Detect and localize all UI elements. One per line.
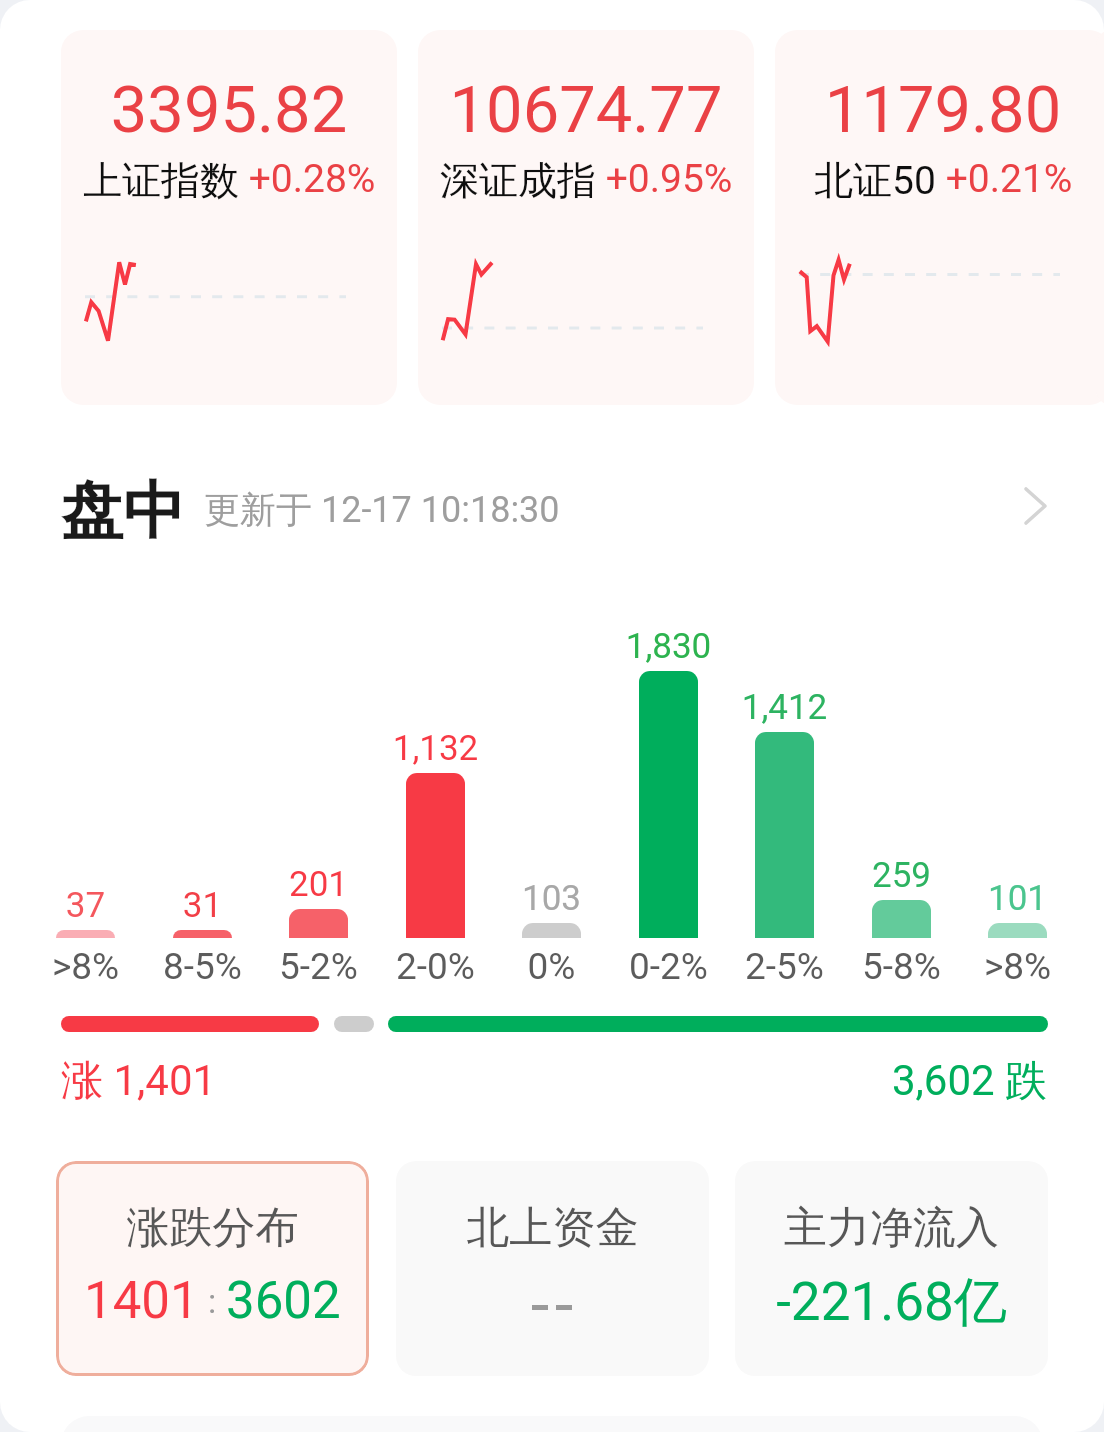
staticText: 2-0% — [366, 945, 505, 988]
staticText: 涨跌分布 — [56, 1201, 369, 1255]
staticText: +0.21% — [936, 156, 1073, 202]
staticText: 31 — [133, 885, 272, 926]
staticText: 103 — [482, 878, 621, 919]
staticText: -221.68亿 — [735, 1269, 1048, 1336]
button[interactable]: 北上资金 — [396, 1161, 709, 1376]
staticText: 3,602 跌 — [892, 1055, 1048, 1108]
staticText: 201 — [249, 864, 388, 905]
button[interactable]: 1179.80 — [775, 30, 1104, 405]
staticText: 10674.77 — [418, 72, 754, 148]
staticText: 259 — [832, 855, 971, 896]
staticText: 1,830 — [599, 626, 738, 667]
staticText: 2-5% — [715, 945, 854, 988]
staticText: 1,132 — [366, 728, 505, 769]
staticText: 北证50 — [814, 156, 936, 205]
staticText: 0-2% — [599, 945, 738, 988]
button[interactable]: 3395.82 — [61, 30, 397, 405]
button[interactable]: 10674.77 — [418, 30, 754, 405]
staticText: 101 — [948, 878, 1087, 919]
staticText: >8% — [948, 945, 1087, 988]
staticText: 3602 — [226, 1271, 341, 1331]
staticText: 5-8% — [832, 945, 971, 988]
staticText: : — [208, 1281, 217, 1321]
staticText: 涨 1,401 — [61, 1055, 217, 1108]
staticText: 深证成指 — [440, 156, 596, 205]
other: More — [1017, 485, 1057, 525]
staticText: 8-5% — [133, 945, 272, 988]
staticText: 5-2% — [249, 945, 388, 988]
staticText: 1,412 — [715, 687, 854, 728]
staticText: 1401 — [84, 1271, 199, 1331]
staticText: 37 — [16, 885, 155, 926]
button[interactable]: 主力净流入 — [735, 1161, 1048, 1376]
staticText: 主力净流入 — [735, 1201, 1048, 1255]
staticText: 0% — [482, 945, 621, 988]
staticText: 3395.82 — [61, 72, 397, 148]
button[interactable]: 涨跌分布 — [56, 1161, 369, 1376]
staticText: +0.95% — [596, 156, 733, 202]
staticText: 更新于 12-17 10:18:30 — [204, 487, 560, 532]
button[interactable]: 盘中 — [0, 461, 1104, 561]
staticText: >8% — [16, 945, 155, 988]
button[interactable] — [0, 1008, 1104, 1040]
staticText: 上证指数 — [83, 156, 239, 205]
staticText: 北上资金 — [396, 1201, 709, 1255]
staticText: 盘中 — [61, 472, 185, 550]
staticText: 1179.80 — [775, 72, 1104, 148]
staticText: +0.28% — [239, 156, 376, 202]
